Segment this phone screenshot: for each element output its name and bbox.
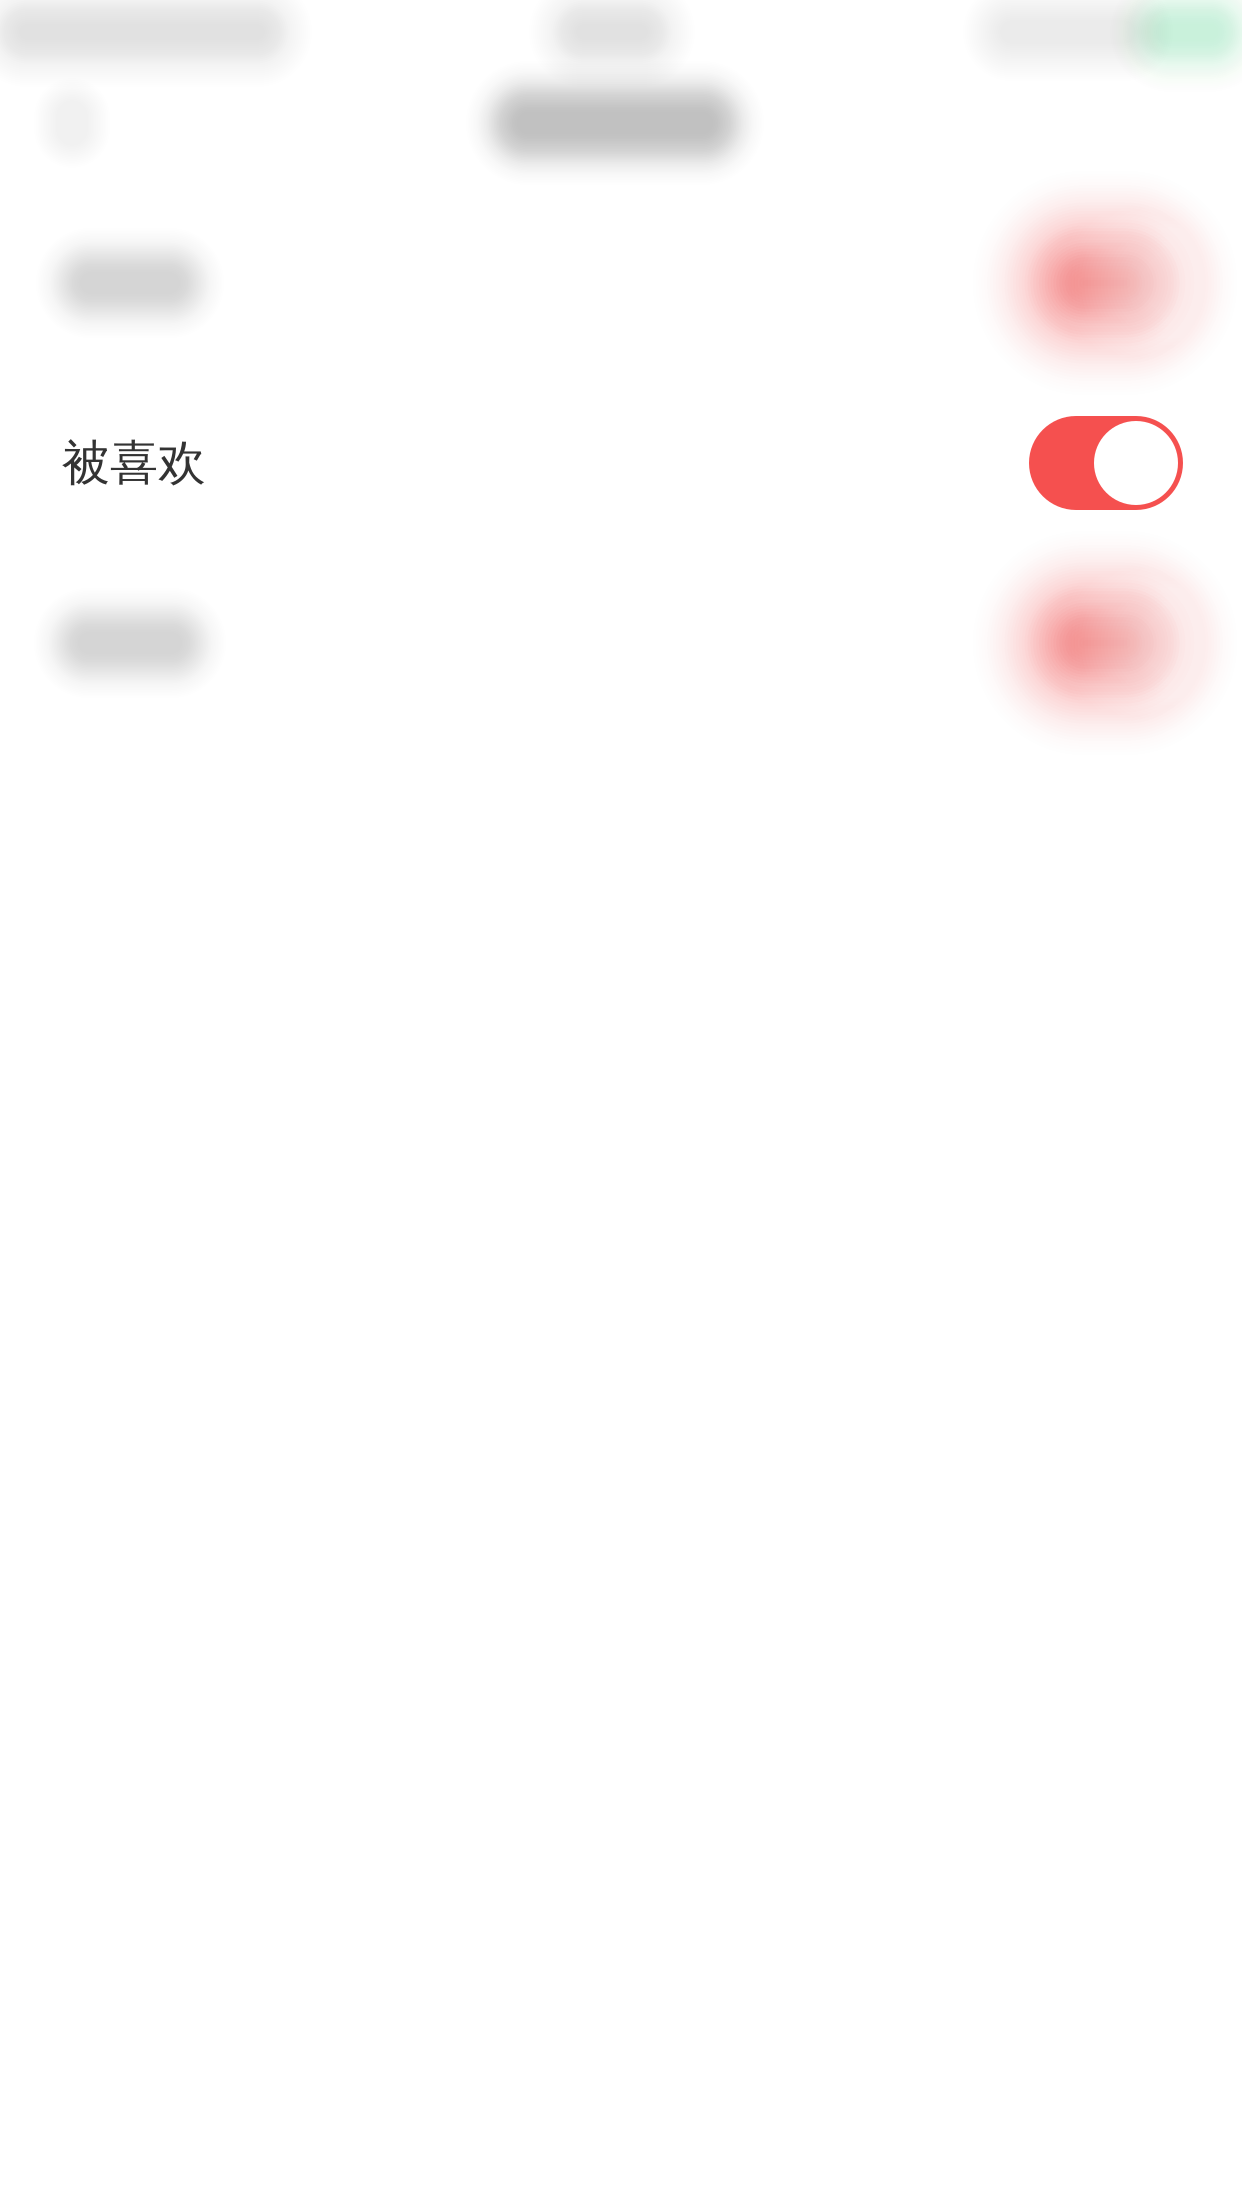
button[interactable]: Back xyxy=(0,0,191,205)
button[interactable] xyxy=(0,0,1242,400)
button[interactable] xyxy=(0,0,1242,400)
staticText: 被喜欢 xyxy=(62,433,206,492)
button[interactable]: 被喜欢 xyxy=(0,373,1242,553)
